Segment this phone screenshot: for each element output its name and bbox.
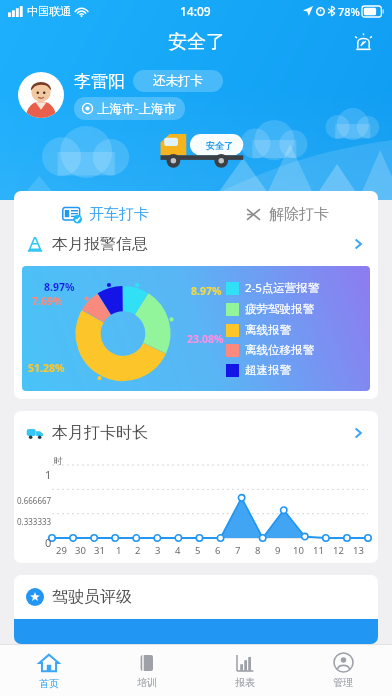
- staticText: 8: [255, 544, 261, 557]
- button[interactable]: 开车打卡: [14, 191, 196, 237]
- staticText: 6: [215, 544, 221, 557]
- staticText: 29: [56, 544, 67, 557]
- staticText: 78%: [338, 4, 360, 19]
- staticText: 0.333333: [17, 516, 52, 527]
- button[interactable]: Profile avatar: [18, 72, 64, 118]
- staticText: 2-5点运营报警: [245, 280, 320, 296]
- staticText: 安全了: [206, 140, 233, 151]
- staticText: 3: [155, 544, 161, 557]
- button[interactable]: 培训: [98, 645, 196, 696]
- staticText: 2: [135, 544, 141, 557]
- staticText: 13: [353, 544, 364, 557]
- staticText: 李雷阳: [74, 71, 125, 92]
- staticText: 5: [195, 544, 201, 557]
- staticText: 0: [45, 535, 52, 550]
- staticText: 开车打卡: [89, 205, 149, 224]
- staticText: 14:09: [180, 3, 211, 19]
- staticText: 7.69%: [32, 294, 63, 308]
- button[interactable]: 本月报警信息: [14, 222, 378, 266]
- staticText: 报表: [235, 676, 255, 689]
- staticText: 31: [94, 544, 105, 557]
- staticText: 中国联通: [27, 4, 71, 18]
- staticText: 30: [75, 544, 86, 557]
- button[interactable]: 本月打卡时长: [14, 411, 378, 455]
- staticText: 12: [333, 544, 344, 557]
- staticText: 4: [175, 544, 181, 557]
- staticText: 安全了: [168, 30, 225, 54]
- staticText: 51.28%: [28, 361, 65, 375]
- staticText: 0.666667: [17, 495, 52, 506]
- staticText: 上海市-上海市: [97, 100, 177, 117]
- button[interactable]: Alarm: [348, 27, 378, 57]
- button[interactable]: 首页: [0, 645, 98, 696]
- staticText: 离线报警: [245, 323, 291, 337]
- staticText: 7: [235, 544, 241, 557]
- staticText: 时: [54, 455, 63, 466]
- staticText: 首页: [39, 677, 59, 690]
- staticText: 23.08%: [187, 332, 224, 346]
- staticText: 还未打卡: [153, 73, 203, 89]
- button[interactable]: 报表: [196, 645, 294, 696]
- staticText: 解除打卡: [269, 205, 329, 224]
- staticText: 超速报警: [245, 363, 291, 377]
- button[interactable]: 还未打卡: [133, 70, 223, 92]
- staticText: 本月报警信息: [52, 234, 148, 254]
- staticText: 驾驶员评级: [52, 587, 132, 607]
- staticText: 疲劳驾驶报警: [245, 302, 314, 316]
- staticText: 8.97%: [44, 280, 75, 294]
- button[interactable]: 管理: [294, 645, 392, 696]
- button[interactable]: 驾驶员评级: [14, 575, 378, 619]
- staticText: 8.97%: [191, 284, 222, 298]
- staticText: 本月打卡时长: [52, 423, 148, 443]
- button[interactable]: 解除打卡: [196, 191, 378, 237]
- staticText: 培训: [137, 676, 157, 689]
- staticText: 10: [293, 544, 304, 557]
- staticText: 11: [313, 544, 324, 557]
- staticText: 1: [45, 467, 52, 482]
- staticText: 1: [116, 544, 122, 557]
- staticText: 离线位移报警: [245, 343, 314, 357]
- button[interactable]: 上海市-上海市: [74, 97, 185, 120]
- staticText: 管理: [333, 676, 353, 689]
- staticText: 9: [275, 544, 281, 557]
